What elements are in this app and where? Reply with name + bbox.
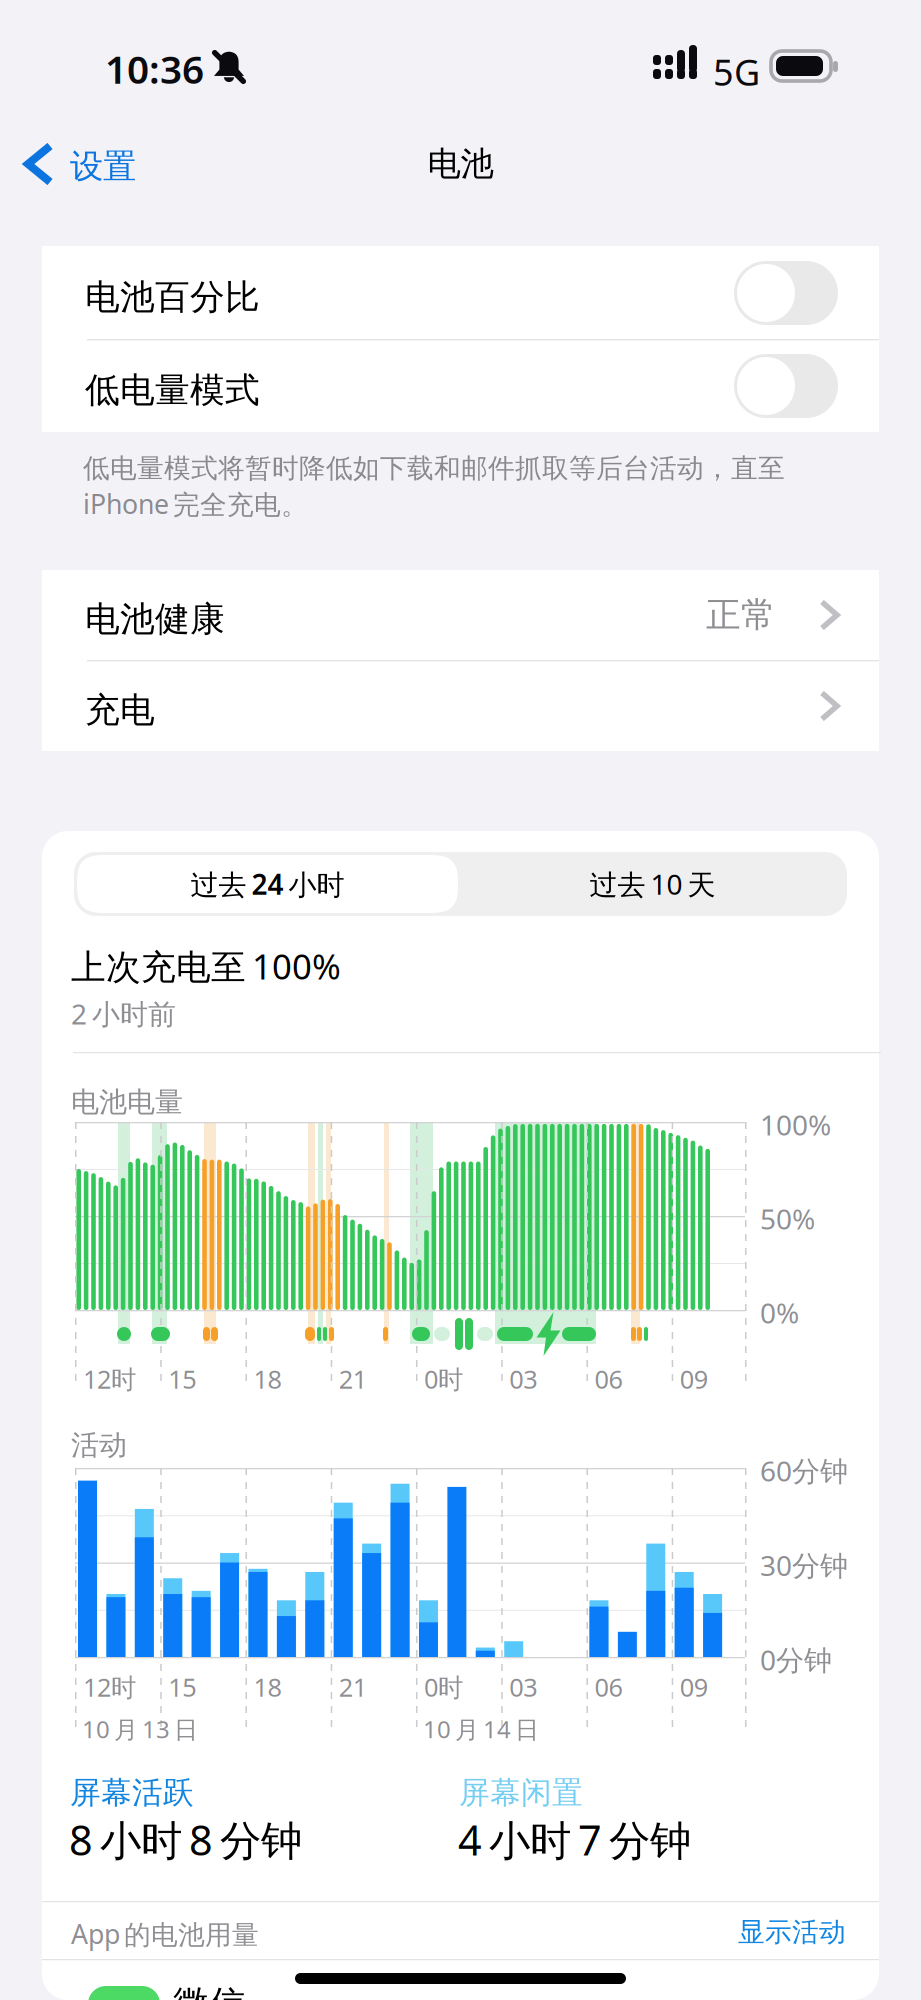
- staticText: 0%: [760, 1294, 799, 1331]
- staticText: 30分钟: [760, 1546, 848, 1584]
- staticText: 电池百分比: [85, 276, 260, 319]
- staticText: 12时: [83, 1670, 136, 1704]
- button[interactable]: 设置: [0, 124, 190, 204]
- staticText: 100%: [760, 1106, 831, 1143]
- staticText: 15: [168, 1670, 196, 1704]
- staticText: 4 小时 7 分钟: [458, 1812, 691, 1867]
- staticText: 5G: [713, 48, 760, 96]
- staticText: 10 月 14 日: [423, 1713, 539, 1745]
- staticText: 0分钟: [760, 1641, 832, 1678]
- staticText: 09: [680, 1670, 708, 1704]
- staticText: 03: [509, 1670, 537, 1704]
- staticText: 正常: [706, 594, 776, 636]
- button[interactable]: 过去 10 天: [462, 855, 843, 913]
- staticText: 微信: [173, 1982, 245, 2000]
- staticText: 上次充电至 100%: [71, 943, 341, 989]
- staticText: 低电量模式: [85, 369, 260, 412]
- staticText: 10 月 13 日: [82, 1713, 198, 1745]
- staticText: 设置: [70, 146, 136, 187]
- staticText: 03: [509, 1362, 537, 1396]
- button[interactable]: 电池百分比: [42, 246, 879, 339]
- staticText: 15: [168, 1362, 196, 1396]
- staticText: 18: [253, 1670, 281, 1704]
- staticText: 2 小时前: [71, 995, 176, 1032]
- staticText: 电池健康: [85, 598, 225, 641]
- button[interactable]: 显示活动: [716, 1914, 846, 1950]
- staticText: 显示活动: [738, 1916, 846, 1948]
- staticText: 60分钟: [760, 1452, 848, 1489]
- staticText: 21: [339, 1362, 367, 1396]
- staticText: 电池电量: [71, 1085, 183, 1119]
- staticText: 10:36: [105, 43, 204, 94]
- staticText: 0时: [424, 1362, 463, 1396]
- staticText: 06: [594, 1670, 622, 1704]
- staticText: 过去 10 天: [589, 865, 715, 903]
- staticText: 0时: [424, 1670, 463, 1704]
- staticText: 12时: [83, 1362, 136, 1396]
- staticText: 低电量模式将暂时降低如下载和邮件抓取等后台活动，直至: [83, 452, 785, 485]
- staticText: 18: [253, 1362, 281, 1396]
- button[interactable]: 低电量模式: [42, 339, 879, 432]
- button[interactable]: 电池健康: [42, 570, 879, 660]
- button[interactable]: 充电: [42, 661, 879, 751]
- staticText: 8 小时 8 分钟: [69, 1812, 302, 1867]
- staticText: App 的电池用量: [71, 1916, 259, 1952]
- button[interactable]: 过去 24 小时: [77, 855, 458, 913]
- staticText: 充电: [85, 689, 155, 732]
- staticText: 屏幕闲置: [459, 1774, 583, 1812]
- staticText: 屏幕活跃: [70, 1774, 194, 1812]
- staticText: 电池: [427, 143, 493, 184]
- staticText: 活动: [71, 1428, 127, 1462]
- staticText: 21: [339, 1670, 367, 1704]
- staticText: 过去 24 小时: [190, 865, 344, 903]
- staticText: iPhone 完全充电。: [83, 486, 308, 522]
- staticText: 06: [594, 1362, 622, 1396]
- staticText: 09: [680, 1362, 708, 1396]
- staticText: 50%: [760, 1200, 815, 1237]
